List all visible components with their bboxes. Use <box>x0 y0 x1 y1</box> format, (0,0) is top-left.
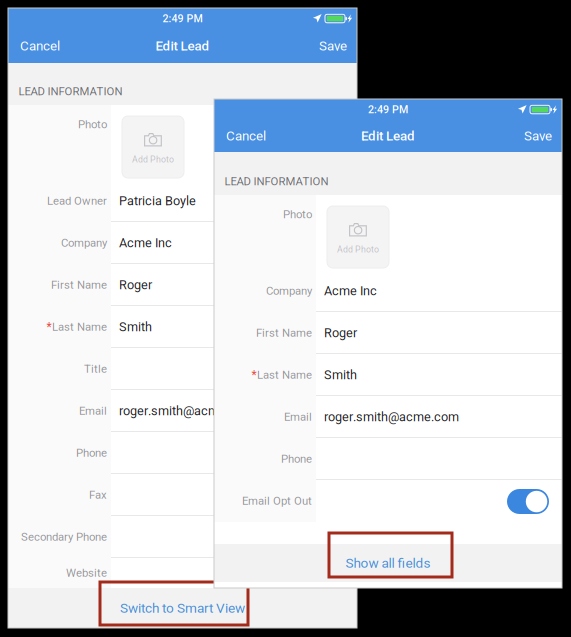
button[interactable]: Cancel <box>226 120 286 152</box>
staticText: * <box>46 320 51 334</box>
staticText: Secondary Phone <box>21 530 107 544</box>
button[interactable]: Save <box>504 120 552 152</box>
button[interactable]: Add Photo <box>327 206 389 268</box>
staticText: Acme Inc <box>119 236 172 250</box>
staticText: Acme Inc <box>324 284 377 298</box>
staticText: Website <box>66 566 107 580</box>
staticText: LEAD INFORMATION <box>224 175 328 188</box>
button[interactable]: Save <box>299 29 347 63</box>
staticText: LEAD INFORMATION <box>18 85 122 98</box>
staticText: Phone <box>281 452 312 466</box>
staticText: Save <box>319 38 347 54</box>
button[interactable]: Email Opt Out toggle <box>507 489 549 514</box>
staticText: 2:49 PM <box>162 12 202 25</box>
staticText: Title <box>84 362 107 376</box>
button[interactable]: Cancel <box>20 29 80 63</box>
staticText: Last Name <box>257 368 312 382</box>
staticText: Lead Owner <box>47 194 107 208</box>
staticText: Roger <box>324 326 357 340</box>
staticText: * <box>251 368 256 382</box>
staticText: Photo <box>78 118 107 131</box>
staticText: Company <box>61 236 107 250</box>
staticText: Show all fields <box>345 555 430 571</box>
staticText: Phone <box>76 446 107 460</box>
staticText: Edit Lead <box>155 38 209 54</box>
staticText: Email <box>79 404 107 418</box>
staticText: Email <box>284 410 312 424</box>
button[interactable]: Show all fields <box>320 544 456 582</box>
staticText: Company <box>266 284 312 298</box>
staticText: Save <box>524 128 552 144</box>
button[interactable]: Add Photo <box>122 116 184 178</box>
staticText: Patricia Boyle <box>119 194 196 208</box>
staticText: Cancel <box>20 38 60 54</box>
staticText: Roger <box>119 278 152 292</box>
staticText: Add Photo <box>132 154 174 165</box>
staticText: Smith <box>324 368 357 382</box>
staticText: Last Name <box>52 320 107 334</box>
staticText: Cancel <box>226 128 266 144</box>
staticText: Smith <box>119 320 152 334</box>
staticText: roger.smith@acme.com <box>324 410 459 424</box>
staticText: Switch to Smart View <box>120 600 245 616</box>
staticText: Fax <box>89 488 107 502</box>
staticText: 2:49 PM <box>368 103 408 116</box>
button[interactable]: Switch to Smart View <box>114 588 250 628</box>
staticText: Email Opt Out <box>242 494 312 508</box>
staticText: Add Photo <box>337 244 379 255</box>
staticText: roger.smith@acme.com <box>119 404 254 418</box>
staticText: Edit Lead <box>361 128 415 144</box>
staticText: First Name <box>51 278 107 292</box>
staticText: Photo <box>283 208 312 221</box>
staticText: First Name <box>256 326 312 340</box>
